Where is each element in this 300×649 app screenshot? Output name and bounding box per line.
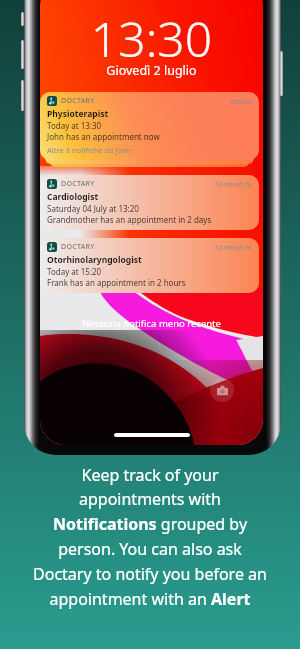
staticText: DOCTARY (61, 96, 95, 106)
staticText: 10 minuti fa (215, 243, 252, 252)
staticText: DOCTARY (61, 242, 95, 252)
button[interactable]: Camera (210, 378, 234, 402)
staticText: 13:30 (40, 6, 263, 71)
staticText: DOCTARY (61, 179, 95, 189)
staticText: 10 minuti fa (215, 180, 252, 189)
staticText: Grandmother has an appointment in 2 days (47, 214, 212, 225)
staticText: Today at 13:30 (47, 120, 102, 131)
button[interactable]: DOCTARY (40, 238, 259, 293)
staticText: Keep track of your appointments with Not… (30, 464, 270, 610)
staticText: Cardiologist (47, 191, 99, 203)
staticText: Physioterapist (47, 108, 109, 120)
staticText: Altre 3 notifiche da John (47, 145, 132, 155)
staticText: Nessuna notifica meno recente (40, 317, 263, 330)
staticText: John has an appointment now (47, 131, 160, 142)
staticText: Saturday 04 July at 13:20 (47, 203, 139, 214)
staticText: Today at 15:20 (47, 266, 102, 277)
button[interactable]: DOCTARY (40, 92, 259, 160)
staticText: Giovedì 2 luglio (40, 62, 263, 79)
staticText: adesso (230, 97, 252, 106)
staticText: Otorhinolaryngologist (47, 254, 142, 266)
staticText: Frank has an appointment in 2 hours (47, 277, 186, 288)
button[interactable]: DOCTARY (40, 175, 259, 230)
